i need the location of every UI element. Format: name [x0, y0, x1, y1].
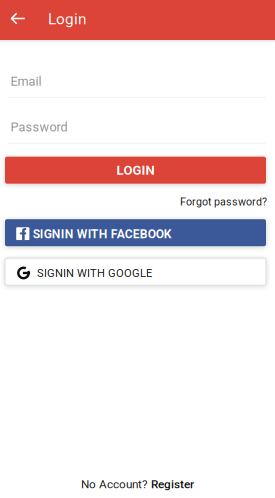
button[interactable]: Forgot password?: [180, 196, 267, 208]
button[interactable]: SIGNIN WITH FACEBOOK: [5, 219, 266, 246]
button[interactable]: LOGIN: [5, 157, 266, 184]
button[interactable]: Email: [0, 74, 275, 98]
staticText: Login: [48, 10, 86, 28]
staticText: SIGNIN WITH FACEBOOK: [33, 227, 172, 241]
staticText: SIGNIN WITH GOOGLE: [37, 267, 152, 280]
staticText: No Account?: [81, 477, 151, 491]
staticText: Email: [10, 74, 41, 89]
button[interactable]: Register: [151, 477, 194, 491]
button[interactable]: Back: [0, 0, 29, 39]
staticText: LOGIN: [116, 162, 154, 178]
staticText: Password: [10, 120, 67, 135]
staticText: Register: [151, 477, 194, 491]
button[interactable]: SIGNIN WITH GOOGLE: [5, 258, 266, 285]
button[interactable]: Password: [0, 120, 275, 144]
staticText: Forgot password?: [180, 196, 267, 208]
